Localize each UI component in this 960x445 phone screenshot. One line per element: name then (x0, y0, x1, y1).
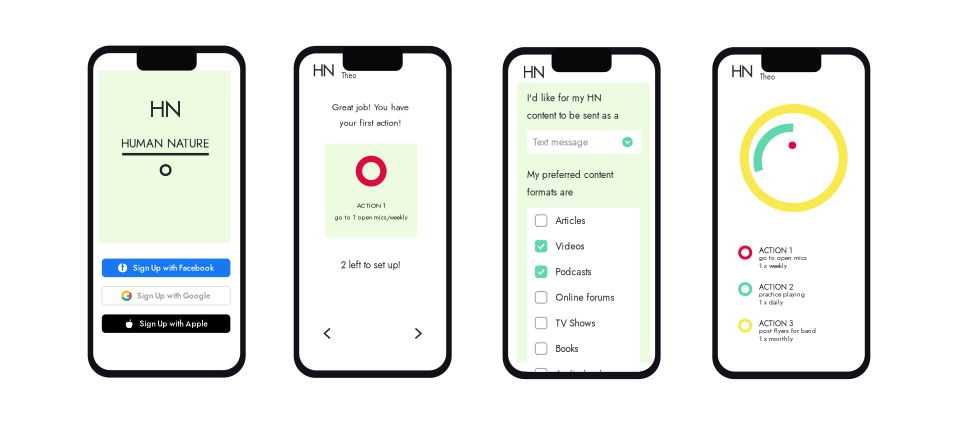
staticText: Audio books (555, 367, 607, 381)
staticText: Books (555, 342, 578, 356)
button[interactable]: Text message (527, 130, 641, 154)
button[interactable]: Audio books (527, 361, 640, 387)
staticText: 1 x monthly (759, 334, 793, 343)
staticText: your first action! (339, 116, 401, 129)
button[interactable]: Next (408, 322, 428, 344)
staticText: Sign Up with Facebook (133, 262, 214, 274)
button[interactable]: TV Shows (527, 310, 640, 336)
staticText: HN (149, 93, 182, 125)
button[interactable]: Sign Up with Google (102, 286, 230, 305)
button[interactable]: Online forums (527, 285, 640, 310)
button[interactable]: Books (527, 336, 640, 361)
staticText: Great job! You have (332, 100, 409, 114)
button[interactable]: Videos (527, 233, 640, 259)
staticText: 2 left to set up! (341, 258, 401, 272)
staticText: ACTION 1 (357, 200, 386, 210)
button[interactable]: Articles (527, 208, 640, 233)
staticText: HUMAN NATURE (121, 135, 210, 152)
staticText: practice playing (759, 289, 805, 299)
staticText: Online forums (555, 290, 614, 304)
staticText: Podcasts (555, 265, 591, 279)
staticText: Videos (555, 239, 584, 253)
staticText: Theo (341, 71, 356, 81)
staticText: HN (523, 61, 545, 84)
staticText: My preferred content (527, 168, 613, 182)
staticText: Articles (555, 214, 585, 228)
button[interactable]: f (102, 259, 230, 277)
staticText: post flyers for band (759, 326, 816, 335)
staticText: f (121, 260, 124, 275)
staticText: TV Shows (555, 316, 595, 330)
staticText: content to be sent as a (527, 108, 619, 122)
staticText: formats are (527, 185, 573, 199)
staticText: I'd like for my HN (527, 91, 602, 105)
staticText: HN (731, 60, 753, 83)
button[interactable]: Podcasts (527, 259, 640, 285)
staticText: Text message (533, 135, 588, 149)
staticText: 1 x daily (759, 297, 783, 307)
staticText: ACTION 1 (759, 245, 792, 256)
staticText: ACTION 3 (759, 318, 793, 329)
staticText: go to open mics (759, 253, 807, 262)
staticText: Sign Up with Apple (140, 318, 208, 329)
staticText: Theo (760, 72, 775, 82)
button[interactable]: Sign Up with Apple (102, 314, 230, 333)
staticText: HN (312, 59, 334, 82)
staticText: Sign Up with Google (137, 290, 210, 302)
button[interactable]: Previous (317, 322, 337, 344)
staticText: ACTION 2 (759, 282, 793, 293)
staticText: 1 x weekly (759, 261, 787, 270)
staticText: go to 1 open mics/weekly (335, 212, 408, 222)
